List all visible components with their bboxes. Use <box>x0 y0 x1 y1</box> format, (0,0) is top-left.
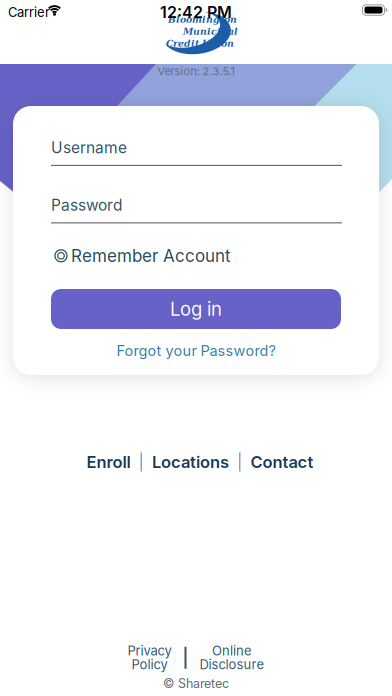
staticText: Username <box>51 138 127 157</box>
staticText: Locations <box>152 452 229 472</box>
staticText: Version: 2.3.5.1 <box>157 64 234 78</box>
button[interactable]: Enroll <box>86 452 130 472</box>
staticText: Privacy <box>127 643 171 659</box>
staticText: Password <box>51 196 122 214</box>
staticText: Municipal <box>183 26 238 37</box>
staticText: Disclosure <box>199 657 264 672</box>
staticText: Contact <box>250 452 313 472</box>
staticText: Enroll <box>86 452 130 472</box>
button[interactable]: Privacy <box>127 643 171 672</box>
staticText: Online <box>212 643 252 659</box>
button[interactable]: Log in <box>51 289 341 329</box>
staticText: 12:42 PM <box>160 2 232 22</box>
staticText: Forgot your Password? <box>116 342 275 359</box>
button[interactable]: Remember Account <box>55 245 231 266</box>
staticText: Credit Union <box>166 38 234 49</box>
staticText: Remember Account <box>71 245 231 266</box>
staticText: Log in <box>170 298 222 320</box>
button[interactable]: Username <box>51 138 342 165</box>
button[interactable]: Forgot your Password? <box>116 342 275 359</box>
staticText: Bloomington <box>168 14 237 25</box>
button[interactable]: Online <box>199 643 264 672</box>
staticText: Policy <box>131 657 167 672</box>
button[interactable]: Locations <box>152 452 229 472</box>
staticText: © Sharetec <box>163 676 229 691</box>
button[interactable]: Password <box>51 196 342 223</box>
button[interactable]: Contact <box>250 452 313 472</box>
staticText: Carrier <box>8 4 50 20</box>
